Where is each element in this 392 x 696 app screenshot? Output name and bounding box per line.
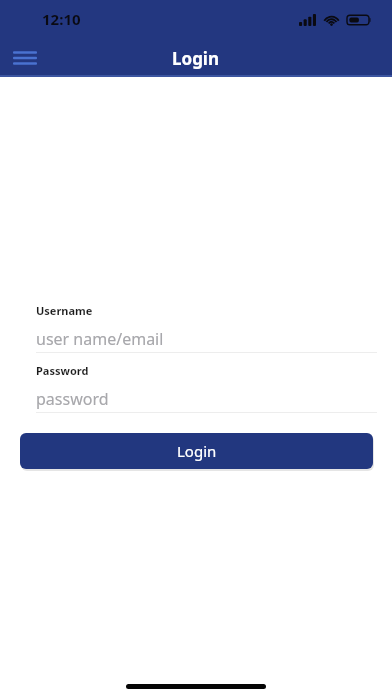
button[interactable]: Login [20,433,373,469]
staticText: 12:10 [42,9,81,29]
staticText: Username [36,303,93,318]
staticText: Login [177,441,217,461]
button[interactable]: password [36,385,377,412]
staticText: Password [36,363,89,378]
staticText: Login [172,47,220,70]
button[interactable]: user name/email [36,325,377,352]
staticText: password [36,388,109,410]
staticText: user name/email [36,328,164,350]
button[interactable]: Open navigation menu [5,42,45,74]
